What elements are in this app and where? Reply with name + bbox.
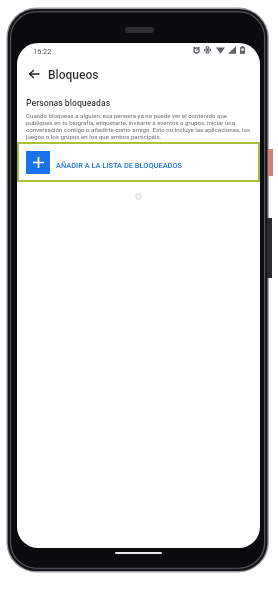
staticText: Personas bloqueadas [26,98,111,108]
button[interactable]: Back [23,63,44,84]
staticText: 16:22 [33,47,52,56]
staticText: Bloqueos [48,68,99,82]
staticText: Cuando bloqueas a alguien, esa persona y… [26,112,251,140]
staticText: AÑADIR A LA LISTA DE BLOQUEADOS [56,161,183,170]
button[interactable]: AÑADIR A LA LISTA DE BLOQUEADOS [17,142,260,182]
